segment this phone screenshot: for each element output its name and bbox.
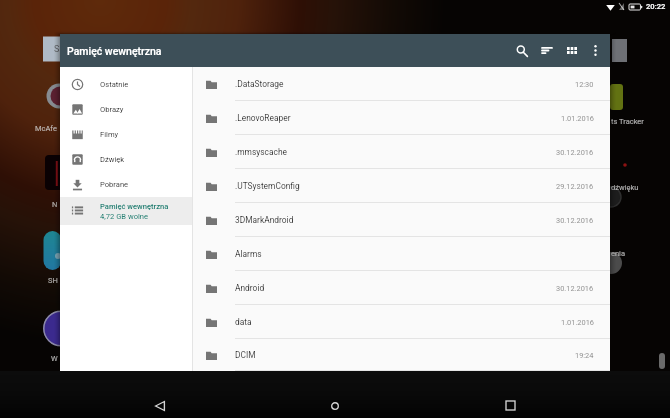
staticText: Obrazy	[100, 105, 124, 114]
button[interactable]: .UTSystemConfig	[192, 169, 610, 203]
staticText: 1.01.2016	[561, 114, 594, 123]
button[interactable]: .LenovoReaper	[192, 101, 610, 135]
staticText: data	[235, 317, 252, 327]
staticText: .DataStorage	[235, 79, 284, 89]
staticText: Ostatnie	[100, 80, 129, 89]
staticText: .LenovoReaper	[235, 113, 291, 123]
button[interactable]: .mmsyscache	[192, 135, 610, 169]
staticText: 4,72 GB wolne	[100, 212, 149, 221]
staticText: 20:22	[646, 2, 666, 11]
staticText: McAfe	[35, 124, 57, 133]
button[interactable]: .DataStorage	[192, 67, 610, 101]
button[interactable]: Home	[314, 385, 355, 418]
staticText: DCIM	[235, 350, 256, 360]
staticText: Pamięć wewnętrzna	[67, 45, 162, 57]
staticText: 30.12.2016	[556, 284, 594, 293]
staticText: dźwięku	[611, 183, 639, 192]
staticText: SH	[48, 276, 58, 285]
button[interactable]: Alarms	[192, 237, 610, 271]
button[interactable]: Filmy	[60, 122, 192, 147]
button[interactable]: More options	[584, 34, 607, 67]
button[interactable]: 3DMarkAndroid	[192, 203, 610, 237]
button[interactable]: Recent apps	[490, 385, 531, 418]
staticText: 30.12.2016	[556, 216, 594, 225]
button[interactable]: Pamięć wewnętrzna	[60, 197, 192, 225]
staticText: N	[52, 200, 58, 209]
staticText: enia	[611, 249, 626, 258]
staticText: .mmsyscache	[235, 147, 287, 157]
button[interactable]: Obrazy	[60, 97, 192, 122]
staticText: .UTSystemConfig	[235, 181, 300, 191]
staticText: Filmy	[100, 130, 119, 139]
button[interactable]: data	[192, 305, 610, 339]
staticText: W	[51, 354, 58, 363]
staticText: Pamięć wewnętrzna	[100, 202, 169, 211]
staticText: Dźwięk	[100, 155, 125, 164]
staticText: 30.12.2016	[556, 148, 594, 157]
staticText: Pobrane	[100, 180, 129, 189]
staticText: Android	[235, 283, 265, 293]
button[interactable]: Back	[139, 385, 180, 418]
staticText: 3DMarkAndroid	[235, 215, 294, 225]
button[interactable]: Grid view	[559, 34, 584, 67]
button[interactable]: DCIM	[192, 339, 610, 371]
staticText: 1.01.2016	[561, 318, 594, 327]
button[interactable]: Ostatnie	[60, 72, 192, 97]
staticText: S	[54, 44, 60, 55]
button[interactable]: Android	[192, 271, 610, 305]
button[interactable]: Dźwięk	[60, 147, 192, 172]
staticText: 12:30	[575, 80, 594, 89]
staticText: Alarms	[235, 249, 262, 259]
staticText: ts Tracker	[611, 117, 644, 126]
staticText: 19:24	[575, 351, 594, 360]
button[interactable]: Search	[509, 34, 534, 67]
button[interactable]: Sort	[534, 34, 559, 67]
button[interactable]: Pobrane	[60, 172, 192, 197]
staticText: 29.12.2016	[556, 182, 594, 191]
